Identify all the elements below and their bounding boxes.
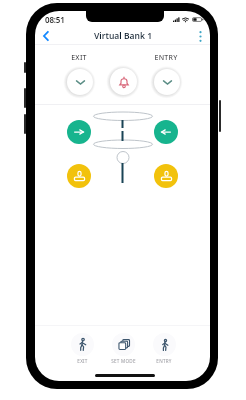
button[interactable]: SET MODE: [107, 330, 139, 366]
button[interactable]: Exit direction: [67, 120, 91, 144]
button[interactable]: Open entry: [154, 69, 180, 95]
staticText: 08:51: [45, 14, 65, 25]
button[interactable]: Exit person: [67, 164, 91, 188]
button[interactable]: Back: [37, 27, 55, 45]
button[interactable]: Open exit: [67, 69, 93, 95]
staticText: EXIT: [77, 358, 88, 364]
button[interactable]: More options: [192, 28, 208, 44]
staticText: EXIT: [71, 53, 87, 62]
staticText: ENTRY: [156, 358, 172, 364]
button[interactable]: Entry direction: [154, 120, 178, 144]
staticText: ENTRY: [154, 53, 178, 62]
button[interactable]: ENTRY: [148, 330, 180, 366]
staticText: SET MODE: [111, 358, 136, 364]
button[interactable]: EXIT: [66, 330, 98, 366]
button[interactable]: Alarm: [110, 68, 137, 95]
button[interactable]: Entry person: [154, 164, 178, 188]
staticText: Virtual Bank 1: [94, 30, 152, 42]
